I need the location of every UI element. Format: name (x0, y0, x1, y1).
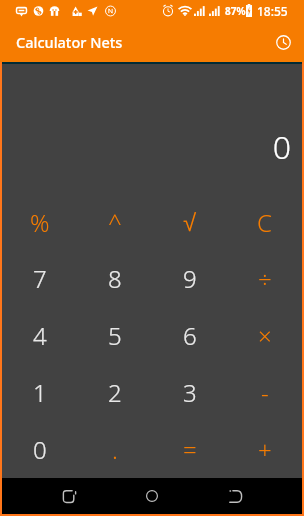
button[interactable]: ^ (77, 194, 152, 250)
button[interactable]: Back (51, 478, 87, 514)
button[interactable]: = (152, 421, 227, 478)
button[interactable]: 1 (2, 364, 77, 421)
button[interactable]: Recents (217, 478, 253, 514)
staticText: 0 (33, 433, 47, 466)
button[interactable]: Home (134, 478, 170, 514)
staticText: 18:55 (257, 3, 288, 19)
button[interactable]: History (266, 25, 300, 59)
staticText: 8 (108, 262, 122, 295)
button[interactable]: 8 (77, 250, 152, 307)
staticText: × (258, 319, 272, 352)
staticText: 0 (272, 125, 291, 169)
button[interactable]: C (227, 194, 302, 250)
staticText: C (257, 206, 272, 239)
staticText: 7 (33, 262, 47, 295)
button[interactable]: 5 (77, 307, 152, 364)
button[interactable]: . (77, 421, 152, 478)
staticText: - (261, 376, 269, 409)
staticText: 87% (225, 4, 246, 18)
staticText: 9 (183, 262, 197, 295)
staticText: ÷ (258, 262, 272, 295)
staticText: 6 (183, 319, 197, 352)
staticText: = (183, 433, 197, 466)
button[interactable]: 3 (152, 364, 227, 421)
button[interactable]: √ (152, 194, 227, 250)
staticText: 5 (108, 319, 122, 352)
staticText: Calculator Nets (16, 32, 123, 52)
staticText: . (112, 433, 118, 466)
button[interactable]: 2 (77, 364, 152, 421)
button[interactable]: % (2, 194, 77, 250)
staticText: + (258, 433, 272, 466)
button[interactable]: ÷ (227, 250, 302, 307)
staticText: 4 (33, 319, 47, 352)
staticText: ^ (108, 206, 122, 239)
staticText: 1 (33, 376, 47, 409)
staticText: % (30, 206, 50, 239)
button[interactable]: + (227, 421, 302, 478)
button[interactable]: 7 (2, 250, 77, 307)
staticText: √ (183, 209, 197, 236)
button[interactable]: × (227, 307, 302, 364)
staticText: 3 (183, 376, 197, 409)
button[interactable]: 4 (2, 307, 77, 364)
button[interactable]: 6 (152, 307, 227, 364)
button[interactable]: 0 (2, 421, 77, 478)
button[interactable]: 9 (152, 250, 227, 307)
staticText: 2 (108, 376, 122, 409)
button[interactable]: - (227, 364, 302, 421)
